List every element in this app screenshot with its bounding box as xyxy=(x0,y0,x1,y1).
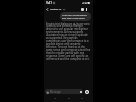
button[interactable]: Home xyxy=(67,96,71,100)
button[interactable]: Recents xyxy=(80,96,84,100)
button[interactable]: Back xyxy=(45,7,49,11)
button[interactable]: Add attachment xyxy=(45,89,83,94)
staticText: 9:41 xyxy=(46,1,52,5)
button[interactable]: ChatGPT 4o xyxy=(50,8,65,11)
staticText: Message xyxy=(50,90,61,94)
button[interactable]: Back xyxy=(53,96,57,100)
button[interactable]: Add attachment xyxy=(46,91,49,94)
staticText: Write two conversations also refer a rea… xyxy=(62,14,89,20)
staticText: Engine text dialogues at its persona con… xyxy=(46,22,91,61)
staticText: ChatGPT 4o xyxy=(50,8,62,11)
button[interactable]: Voice chat xyxy=(80,7,84,11)
button[interactable]: More options xyxy=(85,8,88,11)
button[interactable]: Dictate xyxy=(80,91,82,93)
button[interactable]: Voice mode xyxy=(85,90,89,94)
button[interactable]: Write two conversations also refer a rea… xyxy=(60,12,91,21)
